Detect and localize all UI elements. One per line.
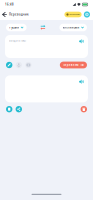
button[interactable]: Camera (25, 62, 32, 68)
button[interactable]: Без рекламы (64, 12, 82, 17)
button[interactable]: Swap languages (38, 22, 48, 32)
staticText: Русский (9, 26, 19, 29)
staticText: Переводчик (9, 13, 29, 16)
staticText: Английский (63, 26, 80, 29)
staticText: Перевести (63, 63, 79, 67)
button[interactable]: Copy (6, 106, 12, 112)
button[interactable]: Listen source (79, 39, 84, 44)
button[interactable]: Handwriting (6, 62, 12, 68)
staticText: Введите текст (9, 39, 26, 42)
button[interactable]: Delete (81, 106, 87, 112)
button[interactable]: Английский (59, 24, 87, 31)
staticText: 16:48 (5, 3, 14, 6)
button[interactable]: Voice input (16, 62, 22, 68)
button[interactable]: Listen translation (79, 79, 84, 84)
button[interactable]: Русский (6, 24, 27, 31)
staticText: Без рекламы (70, 14, 80, 15)
button[interactable]: Share (16, 106, 22, 112)
button[interactable]: Перевести (60, 62, 87, 68)
button[interactable]: Back (0, 9, 9, 19)
button[interactable]: Profile (84, 11, 90, 18)
